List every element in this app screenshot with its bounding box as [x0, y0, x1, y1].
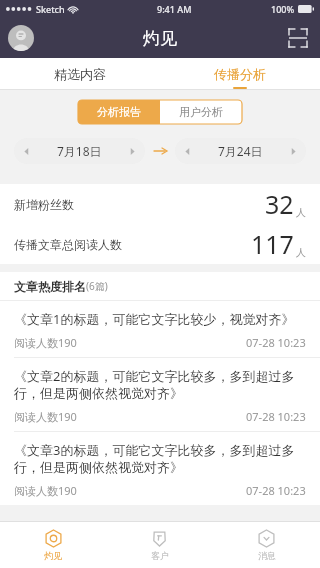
- button[interactable]: 新增粉丝数: [0, 184, 320, 224]
- staticText: 阅读人数190: [14, 409, 77, 424]
- staticText: 7月24日: [218, 143, 263, 159]
- staticText: 07-28 10:23: [246, 483, 306, 498]
- staticText: 100%: [271, 3, 295, 15]
- staticText: 分析报告: [97, 105, 141, 119]
- button[interactable]: Profile: [8, 25, 34, 51]
- staticText: 《文章2的标题，可能它文字比较多，多到超过多行，但是两侧依然视觉对齐》: [14, 367, 306, 402]
- button[interactable]: 分析报告: [78, 100, 160, 124]
- staticText: 新增粉丝数: [14, 197, 74, 212]
- button[interactable]: 7月18日: [14, 138, 145, 164]
- staticText: 客户: [151, 550, 169, 561]
- button[interactable]: 传播文章总阅读人数: [0, 224, 320, 264]
- button[interactable]: 7月24日: [175, 138, 306, 164]
- staticText: Sketch: [36, 3, 65, 15]
- button[interactable]: 《文章3的标题，可能它文字比较多，多到超过多行，但是两侧依然视觉对齐》: [0, 432, 320, 505]
- button[interactable]: 用户分析: [160, 100, 242, 124]
- staticText: 《文章3的标题，可能它文字比较多，多到超过多行，但是两侧依然视觉对齐》: [14, 441, 306, 476]
- button[interactable]: 灼见: [0, 522, 106, 568]
- button[interactable]: Scan: [286, 26, 310, 50]
- staticText: 传播分析: [214, 66, 266, 82]
- staticText: 07-28 10:23: [246, 409, 306, 424]
- staticText: 用户分析: [179, 105, 223, 119]
- staticText: 07-28 10:23: [246, 335, 306, 350]
- staticText: 9:41 AM: [157, 3, 192, 15]
- staticText: 精选内容: [54, 66, 106, 82]
- button[interactable]: 《文章2的标题，可能它文字比较多，多到超过多行，但是两侧依然视觉对齐》: [0, 358, 320, 431]
- staticText: 人: [296, 246, 306, 259]
- button[interactable]: 客户: [106, 522, 213, 568]
- button[interactable]: 传播分析: [160, 58, 320, 90]
- staticText: 传播文章总阅读人数: [14, 237, 122, 252]
- staticText: 文章热度排名: [14, 279, 86, 294]
- staticText: 阅读人数190: [14, 335, 77, 350]
- staticText: (6篇): [86, 279, 108, 293]
- staticText: 《文章1的标题，可能它文字比较少，视觉对齐》: [14, 310, 295, 328]
- button[interactable]: 精选内容: [0, 58, 160, 90]
- staticText: 7月18日: [57, 143, 102, 159]
- staticText: 灼见: [143, 28, 177, 49]
- staticText: 117: [251, 227, 294, 261]
- staticText: 消息: [258, 550, 276, 561]
- staticText: 人: [296, 206, 306, 219]
- staticText: 灼见: [44, 550, 62, 561]
- button[interactable]: 《文章1的标题，可能它文字比较少，视觉对齐》: [0, 301, 320, 357]
- staticText: 阅读人数190: [14, 483, 77, 498]
- staticText: 32: [265, 187, 294, 221]
- button[interactable]: 消息: [213, 522, 320, 568]
